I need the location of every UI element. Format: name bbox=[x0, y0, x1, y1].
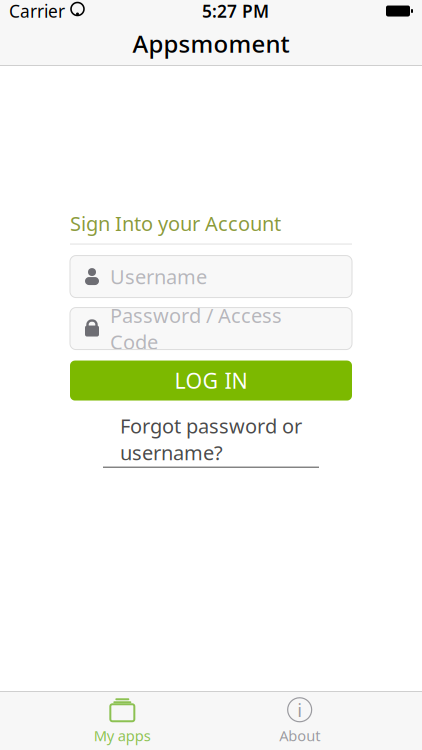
button[interactable]: LOG IN bbox=[70, 361, 352, 401]
button[interactable]: Username bbox=[70, 256, 352, 298]
staticText: Password / Access Code bbox=[110, 302, 282, 355]
staticText: My apps bbox=[94, 726, 151, 745]
button[interactable]: Forgot password or username? bbox=[103, 401, 319, 472]
staticText: About bbox=[279, 726, 320, 745]
staticText: Appsmoment bbox=[132, 28, 289, 59]
button[interactable]: About bbox=[245, 696, 355, 746]
staticText: Username bbox=[110, 263, 207, 290]
staticText: i bbox=[297, 697, 302, 722]
button[interactable]: Password / Access Code bbox=[70, 308, 352, 350]
button[interactable]: My apps bbox=[67, 696, 177, 746]
staticText: Carrier bbox=[9, 0, 65, 22]
staticText: Sign Into your Account bbox=[70, 210, 281, 237]
staticText: Forgot password or username? bbox=[120, 413, 302, 466]
staticText: 5:27 PM bbox=[202, 0, 269, 22]
staticText: LOG IN bbox=[174, 366, 247, 395]
